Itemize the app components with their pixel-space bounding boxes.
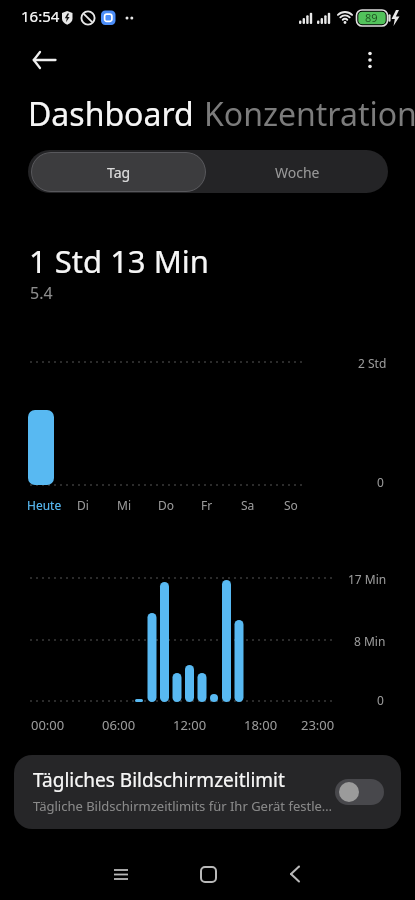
button[interactable]: Tägliches Bildschirmzeitlimit (14, 755, 401, 829)
staticText: 0 (377, 692, 384, 708)
staticText: 1 Std 13 Min (29, 240, 209, 282)
button[interactable] (24, 42, 64, 78)
button[interactable] (262, 852, 328, 896)
staticText: 8 Min (354, 633, 386, 649)
button[interactable]: Woche (210, 152, 385, 192)
staticText: Tag (107, 163, 131, 182)
staticText: Mi (117, 497, 131, 513)
staticText: Tägliche Bildschirmzeitlimits für Ihr Ge… (33, 797, 333, 815)
staticText: So (284, 497, 298, 513)
staticText: 89 (365, 10, 378, 25)
staticText: 18:00 (244, 716, 278, 734)
staticText: Fr (201, 497, 213, 513)
button[interactable] (88, 852, 154, 896)
staticText: Woche (275, 163, 320, 182)
staticText: Di (77, 497, 89, 513)
staticText: 16:54 (21, 6, 60, 26)
button[interactable]: Tag (31, 152, 206, 192)
staticText: 5.4 (30, 282, 53, 304)
staticText: Heute (27, 497, 62, 513)
staticText: 12:00 (173, 716, 207, 734)
staticText: 06:00 (102, 716, 136, 734)
staticText: 0 (377, 474, 384, 490)
staticText: Do (158, 497, 175, 513)
staticText: 00:00 (31, 716, 65, 734)
staticText: Konzentration (204, 92, 415, 136)
staticText: Dashboard (28, 92, 194, 136)
button[interactable] (335, 779, 384, 805)
staticText: 17 Min (348, 571, 387, 587)
button[interactable] (352, 44, 388, 80)
staticText: Sa (241, 497, 255, 513)
button[interactable] (175, 852, 241, 896)
staticText: Tägliches Bildschirmzeitlimit (33, 767, 285, 793)
staticText: 23:00 (301, 716, 335, 734)
staticText: 2 Std (358, 355, 387, 371)
